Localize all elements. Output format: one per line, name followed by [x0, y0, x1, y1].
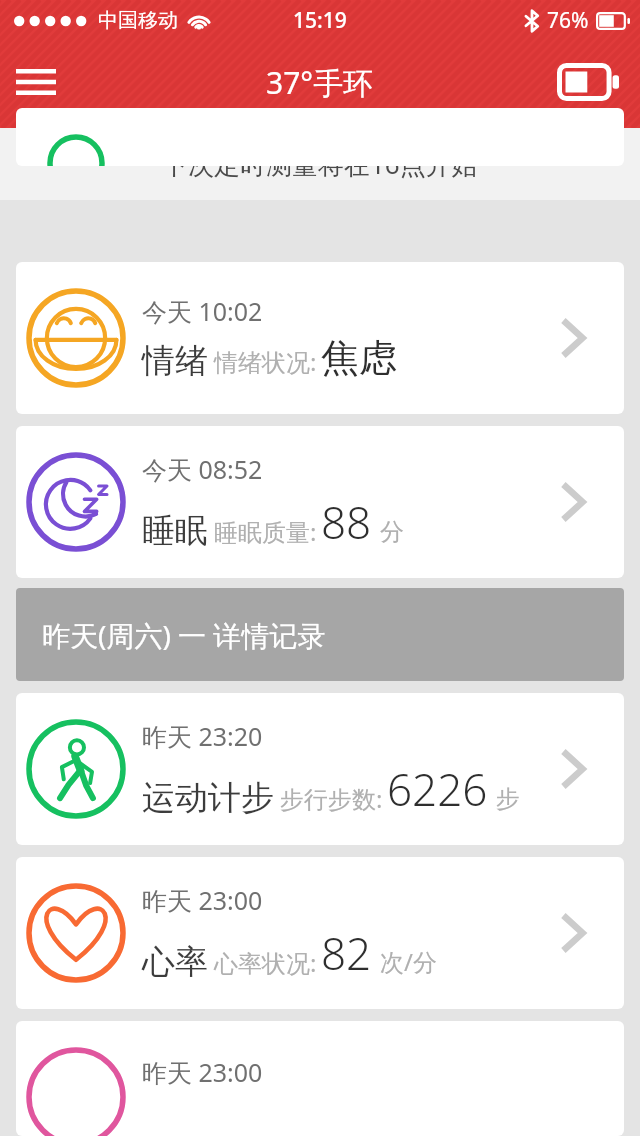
staticText: 今天 08:52	[142, 452, 263, 486]
staticText: 情绪	[142, 340, 208, 382]
staticText: 步行步数:	[280, 782, 383, 815]
staticText: 昨天 23:00	[142, 883, 263, 917]
staticText: 睡眠质量:	[214, 515, 317, 548]
staticText: 情绪状况:	[214, 345, 317, 378]
staticText: 76%	[547, 6, 589, 35]
button[interactable]: Menu	[0, 50, 72, 114]
staticText: 88	[321, 492, 372, 552]
staticText: 运动计步	[142, 777, 274, 819]
staticText: 昨天(周六) 一 详情记录	[42, 616, 326, 654]
staticText: 次/分	[380, 945, 437, 978]
staticText: 步	[496, 784, 520, 814]
button[interactable]: 昨天 23:00	[16, 857, 624, 1009]
staticText: 15:19	[293, 6, 347, 35]
staticText: 82	[321, 923, 372, 983]
staticText: 中国移动	[98, 8, 178, 33]
staticText: 分	[380, 517, 404, 547]
staticText: 昨天 23:00	[142, 1055, 263, 1089]
button[interactable]	[16, 108, 624, 166]
staticText: 心率	[142, 941, 208, 983]
button[interactable]: 今天 08:52	[16, 426, 624, 578]
button[interactable]: 昨天 23:20	[16, 693, 624, 845]
staticText: 昨天 23:20	[142, 719, 263, 753]
button[interactable]: 昨天 23:00	[16, 1021, 624, 1136]
staticText: 下次定时测量将在16点开始	[162, 146, 478, 182]
button[interactable]: Battery status	[548, 50, 628, 114]
staticText: 37°手环	[266, 62, 374, 103]
staticText: 6226	[387, 759, 488, 819]
staticText: 睡眠	[142, 510, 208, 552]
button[interactable]: 今天 10:02	[16, 262, 624, 414]
staticText: 焦虑	[321, 334, 397, 382]
button[interactable]: 昨天(周六) 一 详情记录	[16, 588, 624, 681]
staticText: 今天 10:02	[142, 294, 263, 328]
staticText: 心率状况:	[214, 946, 317, 979]
